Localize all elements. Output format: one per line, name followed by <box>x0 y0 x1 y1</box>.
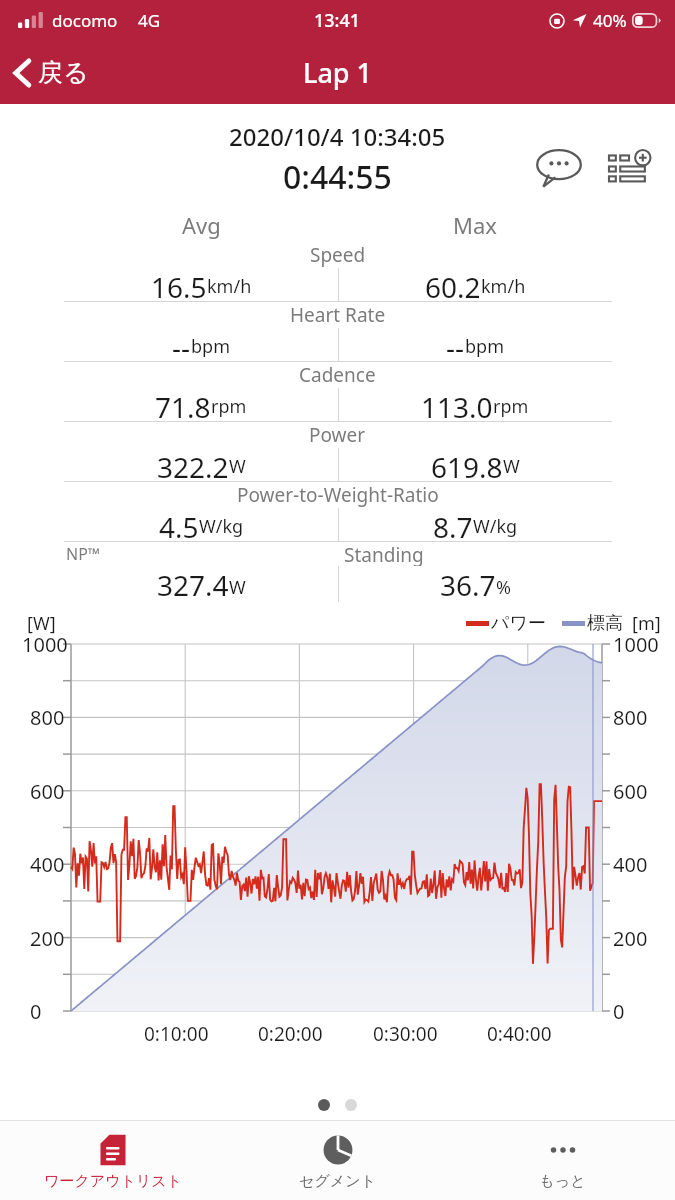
staticText: W <box>229 575 246 600</box>
staticText: 標高 <box>587 612 623 635</box>
button[interactable]: Comments <box>531 144 587 192</box>
staticText: Cadence <box>299 362 376 388</box>
staticText: bpm <box>191 334 230 359</box>
staticText: 戻る <box>38 57 89 88</box>
staticText: Power-to-Weight-Ratio <box>237 482 439 508</box>
button[interactable]: Power <box>0 422 675 481</box>
staticText: もっと <box>539 1172 586 1191</box>
staticText: セグメント <box>299 1172 376 1191</box>
staticText: 322.2 <box>157 448 229 481</box>
staticText: 1000 <box>22 631 68 658</box>
staticText: 0:44:55 <box>283 155 392 199</box>
staticText: 113.0 <box>421 388 493 421</box>
staticText: 600 <box>30 778 65 805</box>
staticText: docomo <box>52 9 118 32</box>
staticText: 400 <box>30 851 65 878</box>
staticText: Max <box>453 210 497 240</box>
staticText: 60.2 <box>425 268 481 301</box>
staticText: 0 <box>30 998 42 1025</box>
staticText: 800 <box>30 704 65 731</box>
staticText: ワークアウトリスト <box>44 1172 182 1191</box>
staticText: 0:40:00 <box>487 1021 552 1047</box>
staticText: Standing <box>344 542 424 566</box>
staticText: W <box>229 454 246 479</box>
staticText: 1000 <box>613 631 659 658</box>
staticText: 8.7 <box>433 508 473 541</box>
staticText: 200 <box>613 925 648 952</box>
button[interactable]: Cadence <box>0 362 675 421</box>
button[interactable]: NP™ <box>0 542 675 602</box>
staticText: [m] <box>632 611 661 636</box>
staticText: 16.5 <box>151 268 207 301</box>
staticText: W <box>503 454 520 479</box>
staticText: W/kg <box>199 514 244 539</box>
staticText: 619.8 <box>431 448 503 481</box>
staticText: -- <box>446 328 465 361</box>
staticText: 36.7 <box>440 566 496 602</box>
button[interactable]: Speed <box>0 242 675 301</box>
staticText: rpm <box>493 394 529 419</box>
staticText: Avg <box>182 210 221 240</box>
staticText: Speed <box>310 242 366 268</box>
staticText: 0 <box>613 998 625 1025</box>
staticText: 4G <box>138 9 161 32</box>
staticText: 71.8 <box>155 388 211 421</box>
staticText: 600 <box>613 778 648 805</box>
staticText: km/h <box>207 274 252 299</box>
staticText: [W] <box>27 611 56 636</box>
staticText: NP™ <box>66 543 101 565</box>
staticText: 4.5 <box>159 508 199 541</box>
staticText: 200 <box>30 925 65 952</box>
staticText: % <box>496 575 511 600</box>
button[interactable]: Add to list <box>603 144 657 192</box>
button[interactable]: セグメント <box>225 1121 450 1200</box>
staticText: 327.4 <box>157 566 229 602</box>
staticText: パワー <box>491 612 546 635</box>
staticText: 13:41 <box>314 8 361 33</box>
staticText: Heart Rate <box>290 302 386 328</box>
staticText: km/h <box>481 274 526 299</box>
staticText: 40% <box>593 9 627 32</box>
button[interactable]: Heart Rate <box>0 302 675 361</box>
staticText: 0:20:00 <box>258 1021 323 1047</box>
staticText: 0:30:00 <box>373 1021 438 1047</box>
staticText: 0:10:00 <box>144 1021 209 1047</box>
staticText: W/kg <box>473 514 518 539</box>
button[interactable]: Power-to-Weight-Ratio <box>0 482 675 541</box>
staticText: -- <box>172 328 191 361</box>
button[interactable]: 戻る <box>0 47 101 98</box>
staticText: Power <box>309 422 366 448</box>
button[interactable]: もっと <box>450 1121 675 1200</box>
staticText: 400 <box>613 851 648 878</box>
button[interactable]: ワークアウトリスト <box>0 1121 225 1200</box>
staticText: bpm <box>465 334 504 359</box>
staticText: 2020/10/4 10:34:05 <box>229 120 446 153</box>
staticText: rpm <box>211 394 247 419</box>
staticText: Lap 1 <box>303 54 373 91</box>
staticText: 800 <box>613 704 648 731</box>
